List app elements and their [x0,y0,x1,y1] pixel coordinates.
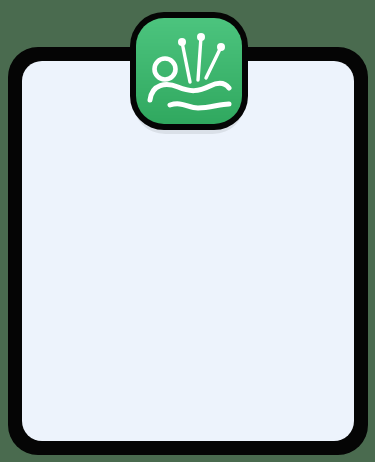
button[interactable]: Acupuncture app icon [130,12,248,130]
button[interactable] [8,47,368,455]
